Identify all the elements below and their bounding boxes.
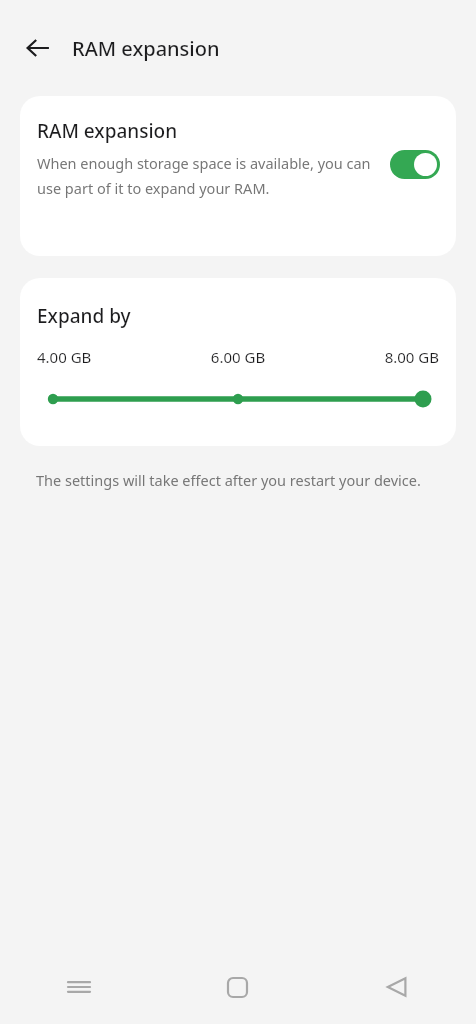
- button[interactable]: Expand by: [20, 278, 456, 446]
- staticText: When enough storage space is available, …: [37, 153, 380, 198]
- staticText: RAM expansion: [72, 35, 220, 62]
- staticText: 8.00 GB: [305, 347, 439, 367]
- button[interactable]: RAM expansion: [20, 96, 456, 256]
- staticText: RAM expansion: [37, 118, 178, 144]
- staticText: The settings will take effect after you …: [36, 470, 440, 490]
- button[interactable]: Expand by slider, 8.00 GB: [37, 385, 439, 413]
- button[interactable]: RAM expansion toggle, on: [390, 150, 440, 179]
- staticText: 6.00 GB: [171, 347, 305, 367]
- button[interactable]: Back: [317, 950, 476, 1024]
- button[interactable]: Back: [14, 24, 62, 72]
- staticText: 4.00 GB: [37, 347, 171, 367]
- staticText: Expand by: [37, 303, 131, 329]
- button[interactable]: Recent apps: [0, 950, 158, 1024]
- button[interactable]: Home: [158, 950, 317, 1024]
